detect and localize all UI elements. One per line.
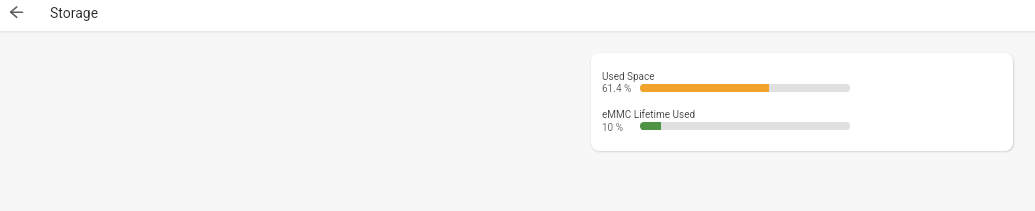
staticText: Used Space — [602, 71, 655, 83]
staticText: Storage — [50, 5, 99, 21]
button[interactable]: Used Space — [591, 53, 1013, 151]
staticText: eMMC Lifetime Used — [602, 109, 696, 121]
button[interactable]: Navigate up — [2, 0, 31, 31]
staticText: 61.4 % — [602, 83, 632, 95]
staticText: 10 % — [602, 122, 624, 134]
